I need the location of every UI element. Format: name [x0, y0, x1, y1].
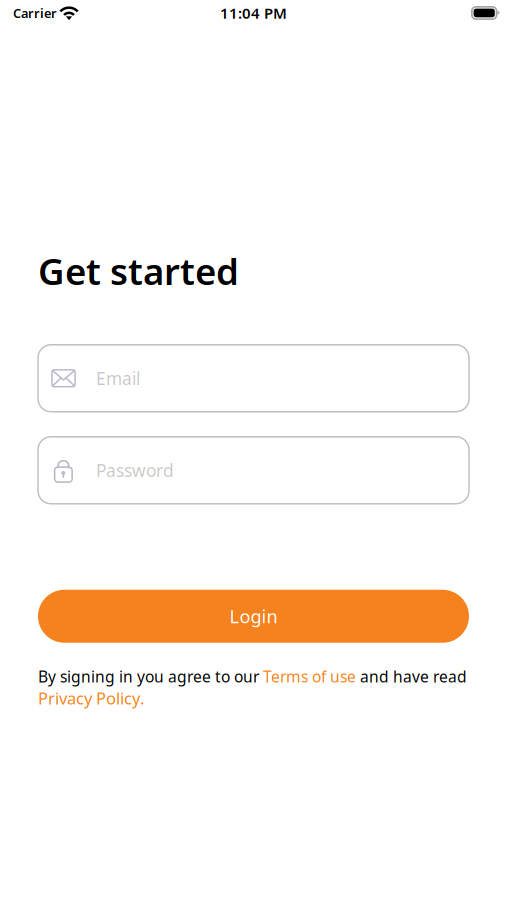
staticText: and have read: [356, 666, 467, 687]
staticText: Password: [96, 458, 174, 482]
button[interactable]: Privacy Policy.: [38, 687, 144, 709]
staticText: Privacy Policy.: [38, 687, 144, 709]
staticText: Login: [229, 604, 277, 629]
button[interactable]: Email: [38, 345, 469, 412]
staticText: 11:04 PM: [220, 3, 287, 23]
staticText: Terms of use: [263, 666, 356, 687]
button[interactable]: Password: [38, 437, 469, 504]
staticText: Carrier: [13, 4, 57, 22]
staticText: By signing in you agree to our: [38, 666, 263, 687]
button[interactable]: Login: [38, 590, 469, 643]
staticText: Email: [96, 366, 140, 390]
staticText: Get started: [38, 246, 239, 296]
button[interactable]: Terms of use: [263, 666, 356, 687]
